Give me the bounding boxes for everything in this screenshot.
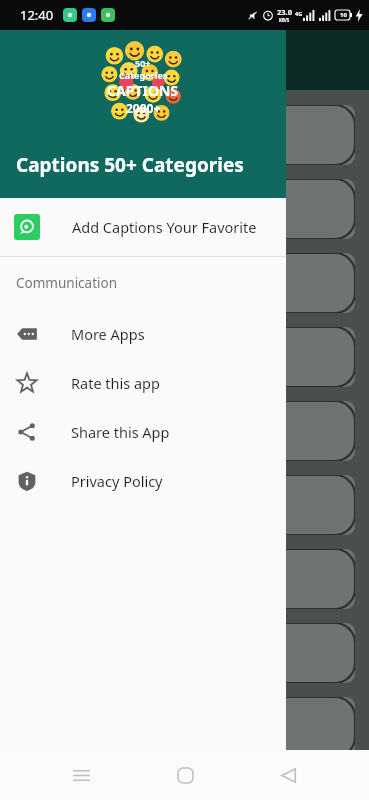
staticText: 2000+ — [126, 100, 161, 116]
staticText: Categories — [119, 69, 168, 81]
button[interactable]: Share this App — [0, 407, 286, 456]
button[interactable]: Motivational — [14, 623, 355, 683]
staticText: Install Now — [211, 766, 308, 789]
staticText: Add Captions Your Favorite — [72, 217, 257, 237]
button[interactable]: Friendship — [14, 401, 355, 461]
staticText: 12:40 — [20, 6, 54, 24]
button[interactable]: Shab e Barah Mubarak — [14, 253, 355, 313]
staticText: Share this App — [71, 422, 170, 442]
staticText: 50+ — [135, 57, 151, 69]
button[interactable]: Back — [266, 753, 310, 797]
button[interactable]: Recent apps — [59, 753, 103, 797]
button[interactable]: Love Sms — [14, 549, 355, 609]
staticText: More Apps — [71, 324, 145, 344]
staticText: KB/S — [279, 17, 290, 23]
staticText: Captions 50+ Categories — [16, 152, 244, 178]
button[interactable]: More Apps — [0, 309, 286, 358]
staticText: Privacy Policy — [71, 471, 163, 491]
staticText: Friendship — [142, 420, 227, 442]
staticText: Communication — [16, 274, 118, 292]
staticText: Rate this app — [71, 373, 160, 393]
button[interactable]: Privacy Policy — [0, 456, 286, 505]
button[interactable]: Poems — [14, 475, 355, 535]
staticText: CAPTIONS — [107, 81, 179, 100]
staticText: 4G — [295, 10, 303, 17]
staticText: 10 — [340, 11, 347, 19]
button[interactable]: Good Day — [14, 105, 355, 165]
staticText: 23.0 — [277, 7, 292, 17]
button[interactable]: Install Now — [0, 755, 369, 800]
button[interactable]: Missing You — [14, 327, 355, 387]
button[interactable]: Rate this app — [0, 358, 286, 407]
button[interactable]: Attitude — [14, 697, 355, 757]
button[interactable]: Miscellaneous — [14, 179, 355, 239]
button[interactable]: Add Captions Your Favorite — [0, 198, 286, 256]
button[interactable]: Home — [163, 753, 207, 797]
